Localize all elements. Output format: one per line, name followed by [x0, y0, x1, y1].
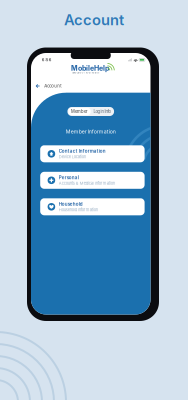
staticText: Household Information: [59, 207, 98, 212]
staticText: Accounts & Medical Information: [59, 181, 115, 186]
staticText: MobileHelp: [71, 64, 109, 72]
staticText: Account: [64, 11, 124, 29]
button[interactable]: Member: [68, 108, 91, 115]
button[interactable]: Contact Information: [40, 145, 145, 162]
staticText: Household: [59, 201, 83, 207]
staticText: Device Location: [59, 154, 86, 159]
staticText: 6:56: [42, 57, 52, 62]
button[interactable]: Account: [0, 12, 188, 28]
staticText: Personal: [59, 175, 79, 180]
button[interactable]: Account: [31, 81, 150, 90]
button[interactable]: Personal: [40, 172, 145, 189]
staticText: Contact Information: [59, 148, 106, 154]
button[interactable]: Login Info: [91, 108, 113, 115]
staticText: Account: [44, 83, 61, 89]
staticText: Login Info: [93, 109, 110, 114]
button[interactable]: Household: [40, 198, 145, 215]
staticText: Member Information: [66, 128, 116, 135]
staticText: Member: [71, 109, 88, 114]
staticText: take care of your health: [72, 71, 99, 74]
